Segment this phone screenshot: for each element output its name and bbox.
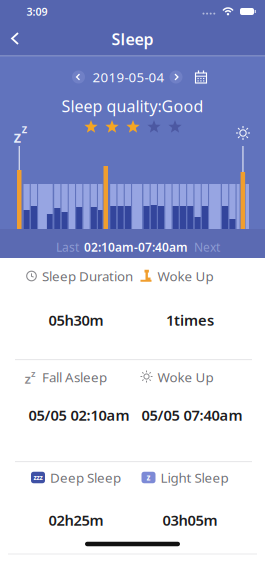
button[interactable]: Next day (169, 70, 182, 83)
staticText: z (31, 367, 36, 380)
staticText: Sleep Duration (42, 267, 133, 285)
staticText: 3:09 (26, 4, 47, 19)
staticText: z (24, 370, 30, 387)
staticText: Sleep quality:Good (61, 95, 203, 117)
staticText: 2019-05-04 (92, 68, 164, 86)
staticText: 05/05 02:10am (28, 405, 129, 425)
staticText: Light Sleep (160, 469, 228, 486)
button[interactable]: Back (10, 31, 24, 47)
staticText: 02h25m (48, 510, 103, 530)
staticText: Sleep (111, 28, 153, 50)
staticText: 02:10am-07:40am (84, 239, 188, 255)
staticText: Deep Sleep (50, 469, 121, 486)
staticText: Woke Up (157, 267, 213, 285)
staticText: z (13, 126, 21, 147)
staticText: Fall Asleep (42, 368, 107, 386)
button[interactable]: Choose date (194, 70, 207, 83)
button[interactable]: Previous day (72, 70, 85, 83)
button[interactable]: Last (56, 239, 79, 255)
staticText: Woke Up (157, 368, 213, 386)
staticText: 03h05m (162, 510, 217, 530)
staticText: 05/05 07:40am (141, 405, 242, 425)
staticText: z (21, 120, 27, 136)
staticText: zzz (33, 473, 42, 482)
staticText: Last (56, 239, 79, 255)
staticText: Next (194, 239, 220, 255)
button[interactable]: Next (194, 239, 220, 255)
staticText: 1times (166, 310, 214, 330)
staticText: 05h30m (48, 310, 103, 330)
staticText: z (146, 472, 150, 483)
